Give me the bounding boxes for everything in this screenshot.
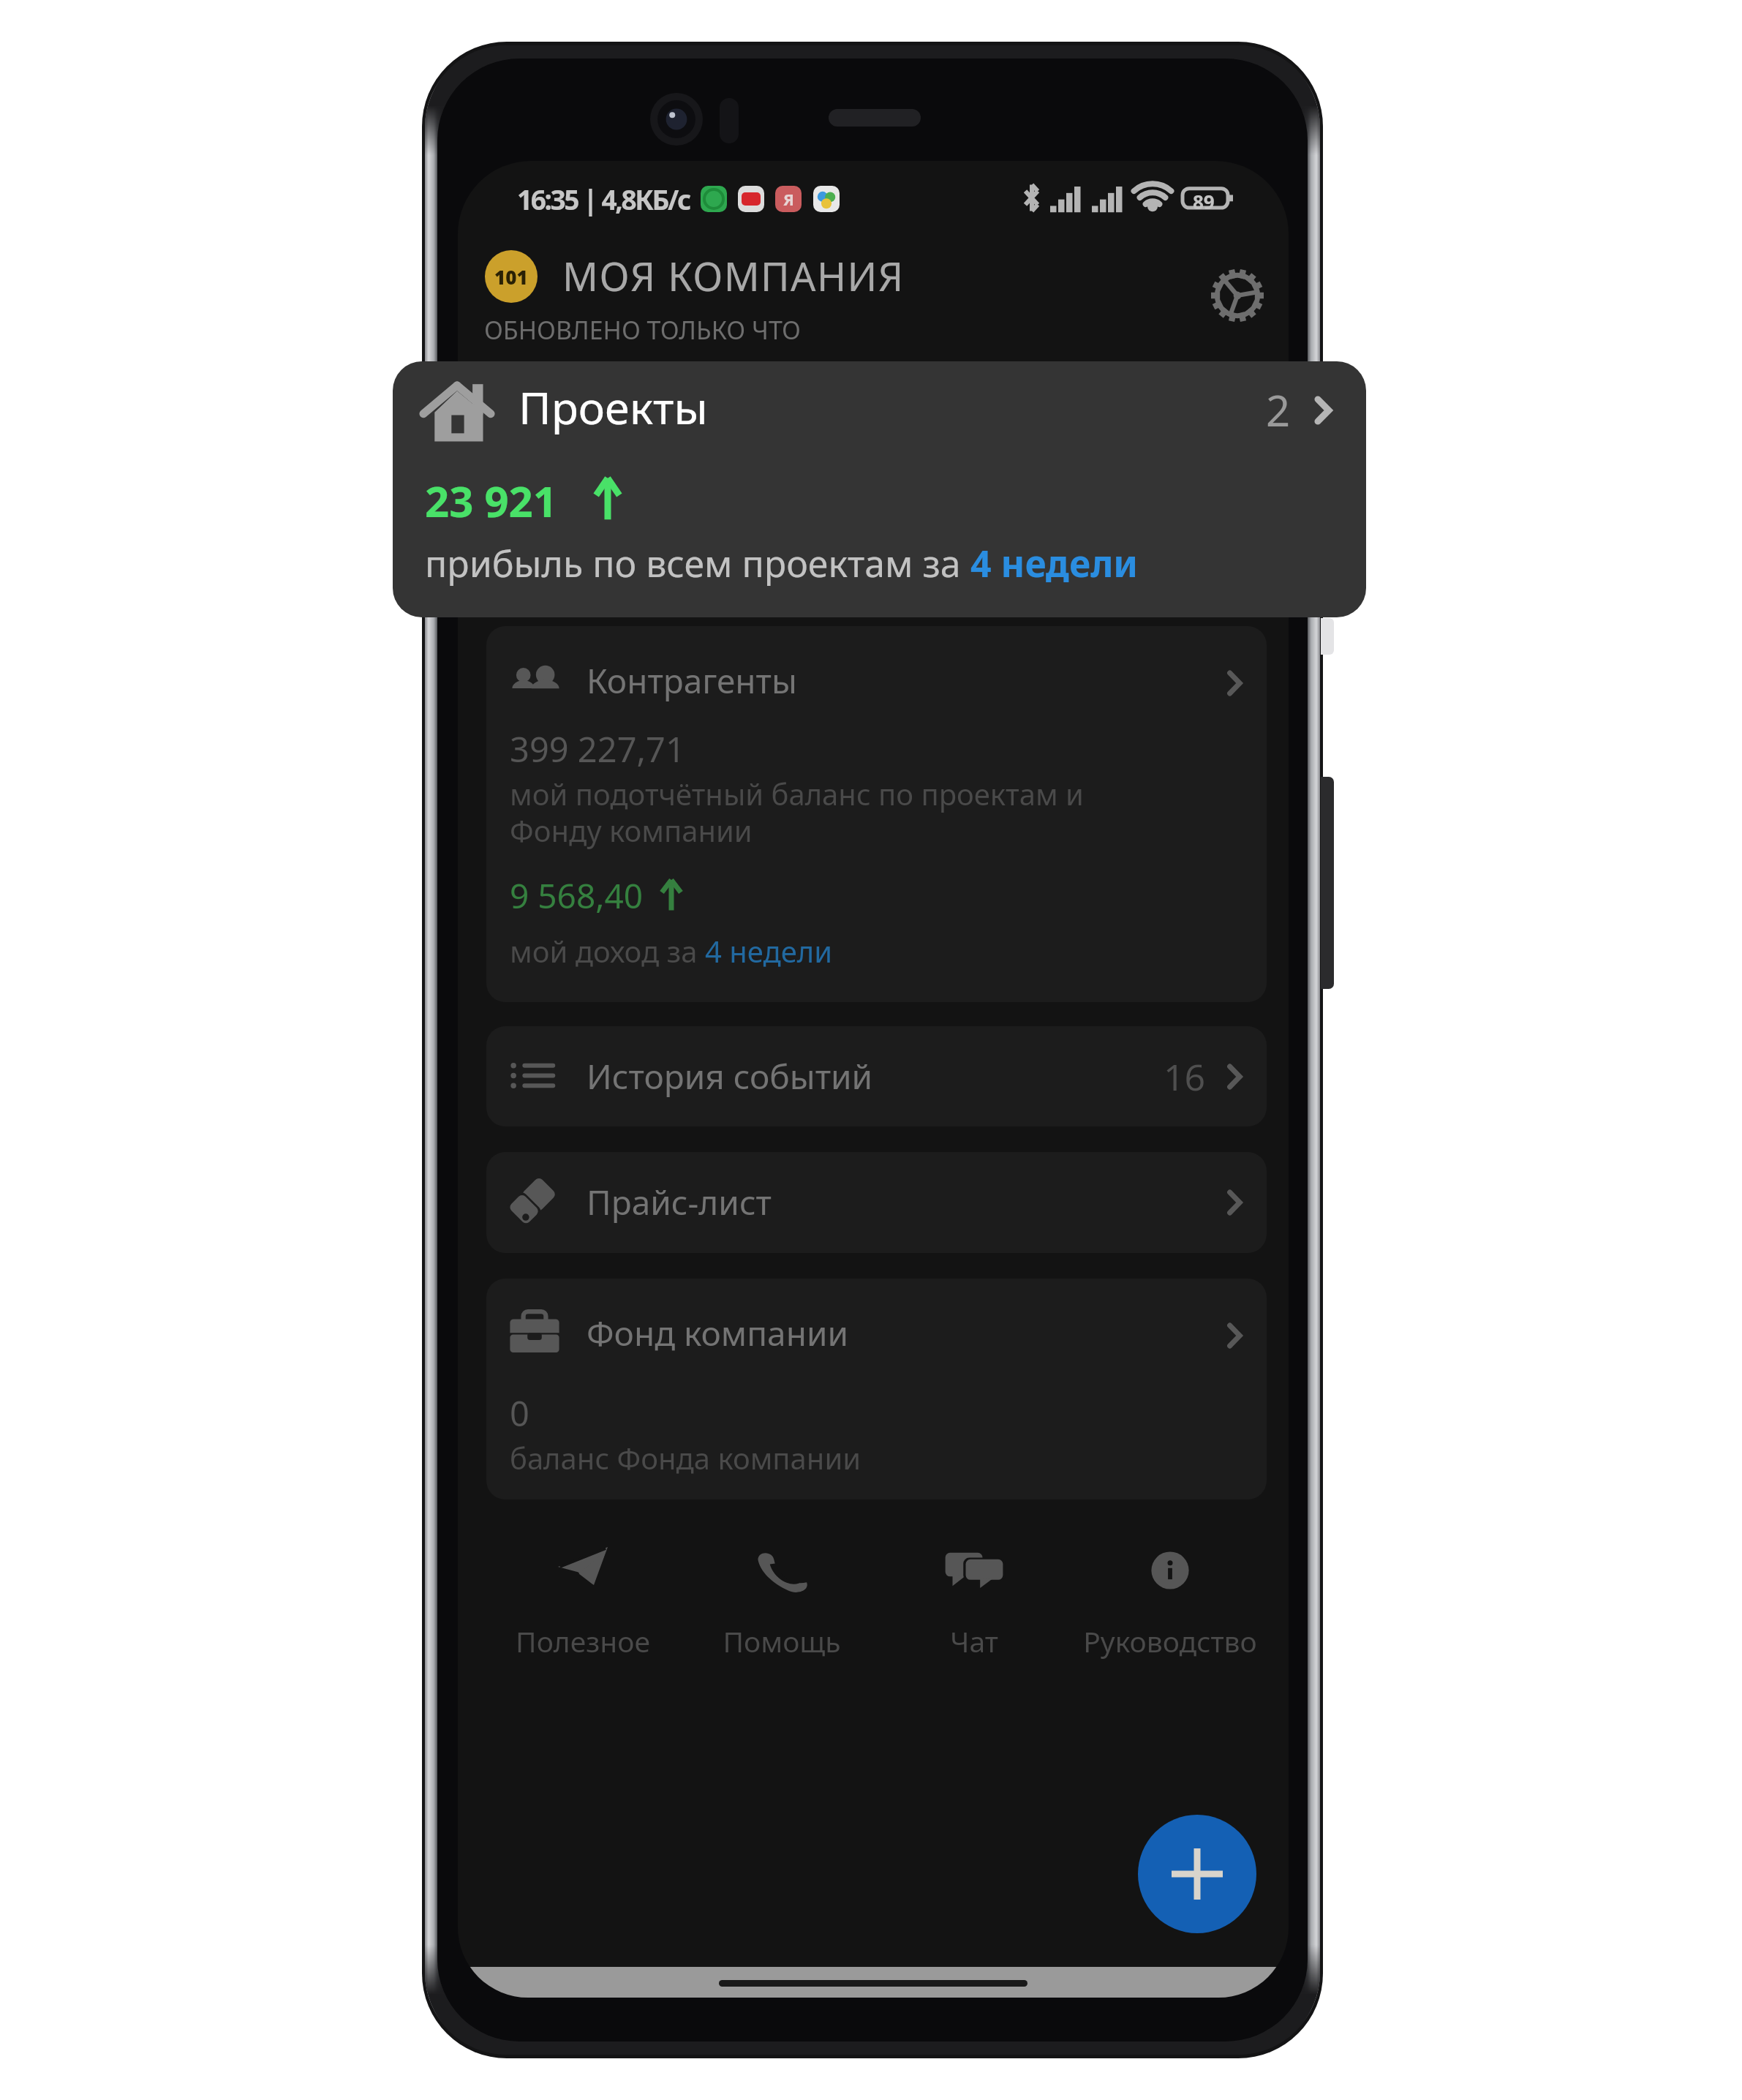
staticText: 4 недели [970,538,1138,588]
staticText: мой доход за [510,931,705,971]
button[interactable]: Руководство [1060,1539,1280,1660]
button[interactable]: Settings [1211,269,1264,322]
staticText: Я [783,188,794,210]
button[interactable]: Проекты [393,361,1366,617]
staticText: прибыль по всем проектам за [425,538,970,588]
staticText: баланс Фонда компании [510,1438,861,1478]
button[interactable]: Прайс-лист [486,1152,1267,1253]
staticText: 9 568,40 [510,873,644,919]
staticText: Проекты [519,377,708,437]
staticText: 101 [494,264,528,290]
staticText: 89 [1193,189,1215,214]
staticText: Фонд компании [587,1310,849,1356]
staticText: 399 227,71 [510,726,685,772]
staticText: Помощь [723,1622,841,1660]
staticText: мой подотчётный баланс по проектам и Фон… [510,774,1084,851]
button[interactable]: Контрагенты [486,626,1267,1002]
staticText: 16:35 | 4,8КБ/с [517,181,690,217]
staticText: 16 [1164,1052,1206,1102]
staticText: ОБНОВЛЕНО ТОЛЬКО ЧТО [484,313,801,347]
staticText: Чат [950,1622,998,1660]
button[interactable]: История событий [486,1026,1267,1126]
staticText: Контрагенты [587,658,797,704]
button[interactable]: Помощь [672,1539,891,1660]
button[interactable]: Полезное [473,1539,693,1660]
button[interactable]: Чат [864,1539,1084,1660]
staticText: 4 недели [705,931,833,971]
staticText: МОЯ КОМПАНИЯ [562,249,905,303]
button[interactable]: Фонд компании [486,1279,1267,1499]
staticText: 0 [510,1390,529,1437]
staticText: 23 921 [425,472,557,530]
staticText: Прайс-лист [587,1179,772,1225]
staticText: История событий [587,1053,873,1099]
staticText: Полезное [516,1622,650,1660]
button[interactable]: Add [1138,1815,1256,1933]
staticText: Руководство [1083,1622,1257,1660]
staticText: 2 [1266,381,1291,439]
